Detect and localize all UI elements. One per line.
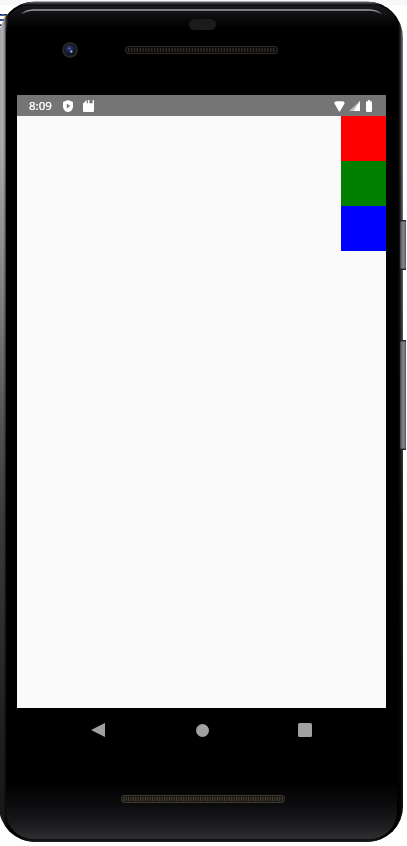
button[interactable]: Home — [180, 708, 224, 752]
staticText: 8:09 — [29, 98, 52, 114]
button[interactable]: Recent apps — [283, 708, 327, 752]
button[interactable]: Back — [76, 708, 120, 752]
